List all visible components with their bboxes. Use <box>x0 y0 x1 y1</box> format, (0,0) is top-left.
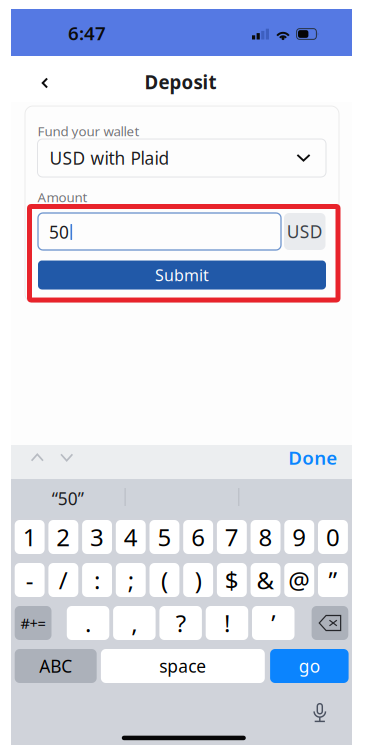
staticText: 3 <box>90 521 104 553</box>
staticText: USD <box>287 220 323 243</box>
staticText: 50 <box>49 220 69 243</box>
button[interactable]: : <box>82 563 112 597</box>
button[interactable]: 2 <box>48 520 78 554</box>
staticText: / <box>59 564 68 596</box>
staticText: ! <box>224 607 230 639</box>
button[interactable]: 6 <box>183 520 213 554</box>
button[interactable]: USD with Plaid <box>37 139 326 177</box>
staticText: $ <box>225 564 239 596</box>
staticText: ” <box>328 564 337 596</box>
staticText: 6:47 <box>68 21 106 45</box>
staticText: Deposit <box>144 70 216 94</box>
button[interactable]: ABC <box>15 649 97 683</box>
staticText: , <box>131 607 137 639</box>
button[interactable]: 8 <box>251 520 280 554</box>
staticText: @ <box>288 564 310 596</box>
button[interactable]: & <box>251 563 280 597</box>
button[interactable]: 3 <box>82 520 112 554</box>
button[interactable]: space <box>101 649 265 683</box>
staticText: 1 <box>23 521 37 553</box>
staticText: ’ <box>271 607 275 639</box>
button[interactable]: #+= <box>15 606 51 640</box>
staticText: ( <box>161 564 168 596</box>
button[interactable]: . <box>67 606 109 640</box>
button[interactable]: $ <box>217 563 247 597</box>
staticText: “50” <box>52 487 84 510</box>
button[interactable]: Delete <box>312 606 348 640</box>
staticText: USD with Plaid <box>49 146 169 169</box>
staticText: 5 <box>157 521 171 553</box>
staticText: space <box>159 654 206 677</box>
staticText: 0 <box>326 521 340 553</box>
staticText: Submit <box>155 264 209 286</box>
staticText: 9 <box>292 521 306 553</box>
button[interactable]: go <box>270 649 349 683</box>
button[interactable]: 5 <box>149 520 179 554</box>
staticText: ; <box>128 564 134 596</box>
button[interactable]: , <box>113 606 156 640</box>
button[interactable]: ) <box>183 563 213 597</box>
button[interactable]: Dictate <box>303 698 337 728</box>
button[interactable]: @ <box>284 563 314 597</box>
button[interactable]: ; <box>116 563 146 597</box>
button[interactable]: Done <box>277 442 337 472</box>
button[interactable]: 9 <box>284 520 314 554</box>
button[interactable]: ? <box>159 606 202 640</box>
button[interactable]: Next field <box>52 442 82 472</box>
button[interactable]: Submit <box>38 260 326 289</box>
staticText: go <box>299 654 320 677</box>
button[interactable]: 1 <box>15 520 45 554</box>
staticText: Fund your wallet <box>37 122 139 140</box>
button[interactable]: 0 <box>318 520 348 554</box>
staticText: ) <box>195 564 202 596</box>
staticText: & <box>256 564 274 596</box>
staticText: 6 <box>191 521 205 553</box>
button[interactable]: Previous field <box>22 442 52 472</box>
staticText: ? <box>176 607 186 639</box>
staticText: 7 <box>225 521 239 553</box>
staticText: : <box>94 564 100 596</box>
button[interactable]: ! <box>206 606 248 640</box>
staticText: Amount <box>37 188 87 206</box>
staticText: ABC <box>39 654 72 677</box>
staticText: 8 <box>258 521 272 553</box>
button[interactable]: Back <box>30 68 60 98</box>
button[interactable]: “50” <box>11 479 125 518</box>
button[interactable]: - <box>15 563 45 597</box>
staticText: 4 <box>124 521 138 553</box>
button[interactable]: ’ <box>252 606 294 640</box>
staticText: 2 <box>56 521 70 553</box>
staticText: Done <box>288 445 337 470</box>
button[interactable]: ( <box>149 563 179 597</box>
button[interactable]: 4 <box>116 520 146 554</box>
button[interactable]: ” <box>318 563 348 597</box>
staticText: - <box>26 564 34 596</box>
button[interactable]: / <box>48 563 78 597</box>
staticText: #+= <box>21 613 46 633</box>
staticText: . <box>85 607 91 639</box>
button[interactable]: 7 <box>217 520 247 554</box>
